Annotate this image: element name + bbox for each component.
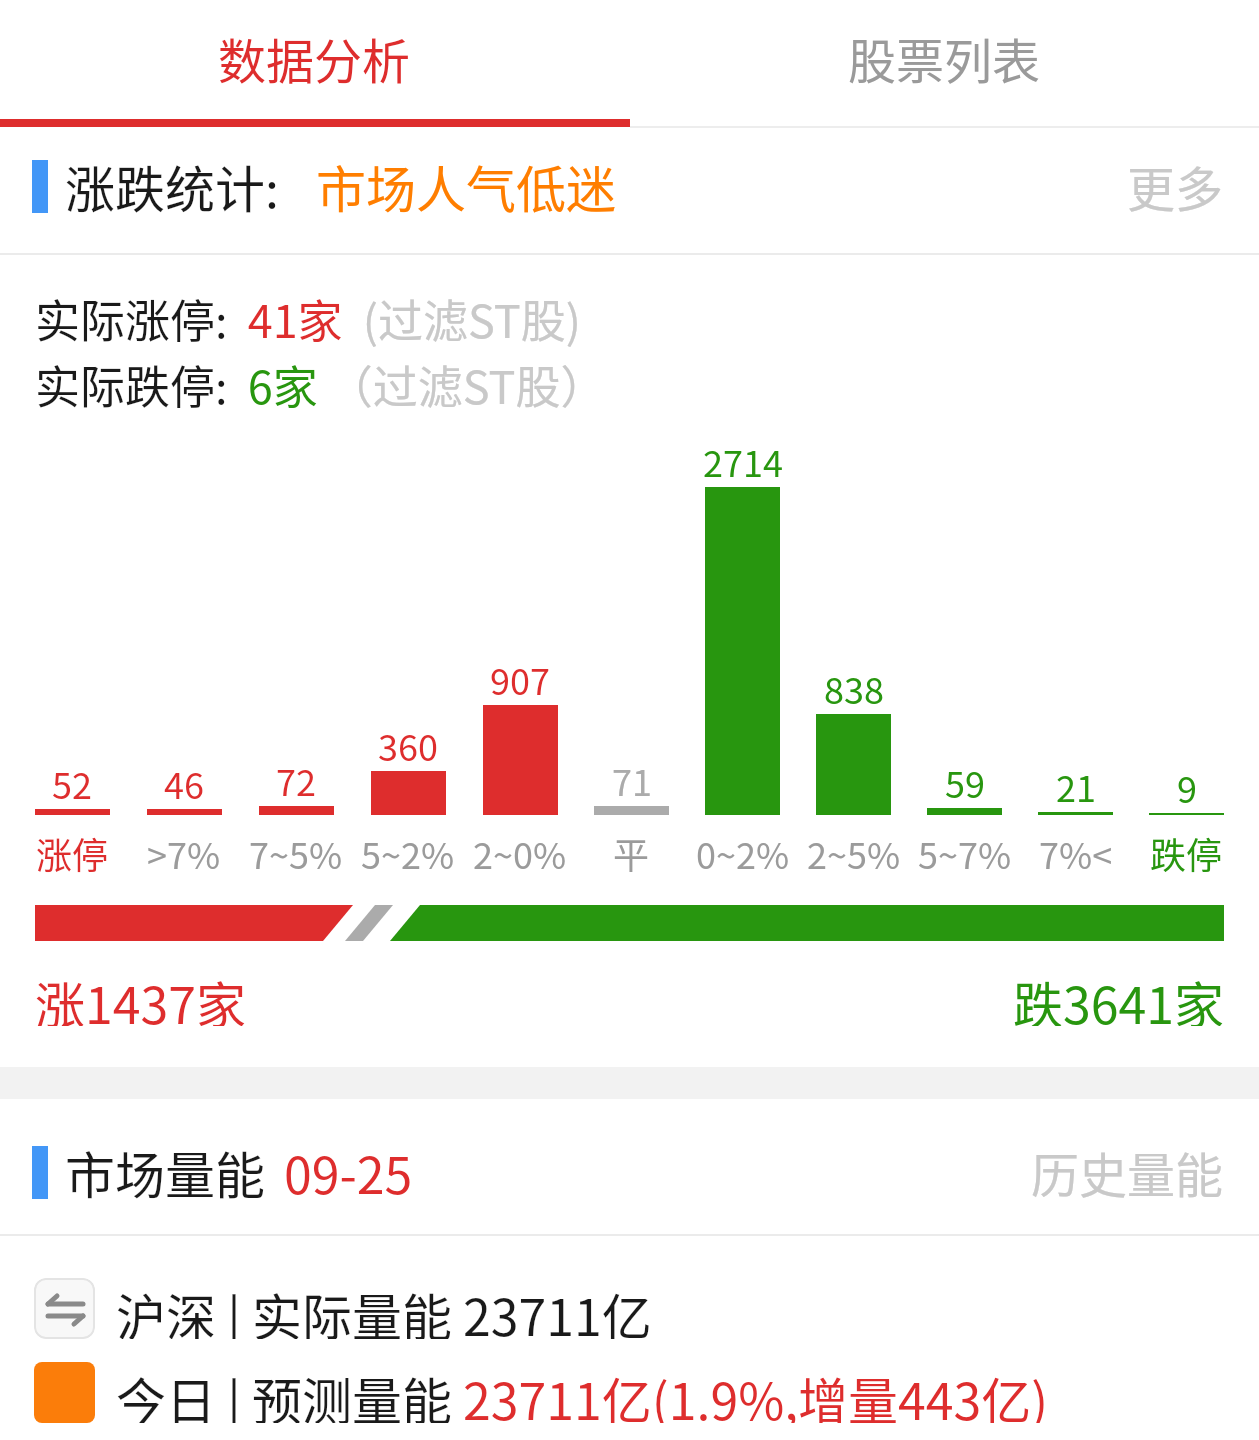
staticText: 跌停	[1150, 827, 1223, 879]
staticText: 平	[613, 827, 650, 879]
staticText: 9	[1177, 761, 1197, 813]
staticText: 2714	[703, 435, 783, 487]
staticText: 跌3641家	[1013, 966, 1224, 1026]
staticText: 5~7%	[918, 827, 1012, 879]
staticText: 数据分析	[218, 23, 411, 93]
staticText: 今日 | 预测量能 23711亿(1.9%,增量443亿)	[116, 1362, 1049, 1423]
staticText: 0~2%	[696, 827, 790, 879]
staticText: 907	[490, 653, 550, 705]
staticText: 市场量能	[65, 1136, 265, 1208]
staticText: 股票列表	[848, 23, 1041, 93]
button[interactable]: 市场量能	[32, 1126, 1224, 1218]
staticText: 实际涨停: 41家 (过滤ST股)	[35, 286, 581, 351]
staticText: 52	[52, 757, 92, 809]
staticText: 涨1437家	[35, 966, 246, 1026]
staticText: 72	[276, 754, 316, 806]
staticText: 2~5%	[807, 827, 901, 879]
staticText: 838	[824, 662, 884, 714]
button[interactable]: 今日 | 预测量能 23711亿(1.9%,增量443亿)	[34, 1362, 1049, 1423]
staticText: 市场人气低迷	[316, 150, 616, 222]
staticText: 沪深 | 实际量能 23711亿	[116, 1278, 652, 1339]
staticText: 涨跌统计:	[65, 150, 279, 222]
staticText: 21	[1056, 760, 1096, 812]
staticText: 71	[612, 754, 652, 806]
button[interactable]: 股票列表	[629, 0, 1259, 116]
staticText: 46	[164, 757, 204, 809]
staticText: >7%	[147, 827, 221, 879]
staticText: 2~0%	[473, 827, 567, 879]
staticText: 实际跌停: 6家 （过滤ST股）	[35, 352, 606, 417]
staticText: 59	[945, 756, 985, 808]
staticText: 历史量能	[1031, 1137, 1224, 1207]
staticText: 更多	[1127, 151, 1224, 221]
staticText: 5~2%	[361, 827, 455, 879]
staticText: 09-25	[284, 1136, 413, 1208]
staticText: 7~5%	[249, 827, 343, 879]
button[interactable]: 涨跌统计:	[32, 140, 1224, 232]
staticText: 7%<	[1039, 827, 1113, 879]
button[interactable]: 沪深 | 实际量能 23711亿	[34, 1278, 652, 1339]
staticText: 360	[378, 719, 438, 771]
button[interactable]: 数据分析	[0, 0, 629, 116]
staticText: 涨停	[36, 827, 109, 879]
